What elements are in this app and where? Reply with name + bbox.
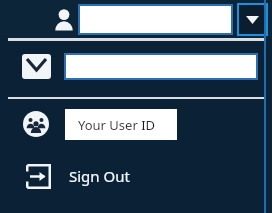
button[interactable]: Your User ID bbox=[0, 100, 272, 148]
button[interactable]: Account name bbox=[78, 4, 233, 35]
staticText: Sign Out bbox=[69, 166, 130, 186]
button[interactable]: Account bbox=[50, 5, 78, 33]
other: Email bbox=[22, 54, 51, 79]
button[interactable]: Email bbox=[0, 41, 272, 97]
button[interactable]: Sign Out bbox=[0, 152, 272, 200]
button[interactable]: Email address bbox=[64, 53, 258, 80]
button[interactable]: Open account list bbox=[237, 3, 268, 36]
staticText: Your User ID bbox=[78, 116, 156, 134]
other: Sign Out bbox=[26, 164, 51, 189]
